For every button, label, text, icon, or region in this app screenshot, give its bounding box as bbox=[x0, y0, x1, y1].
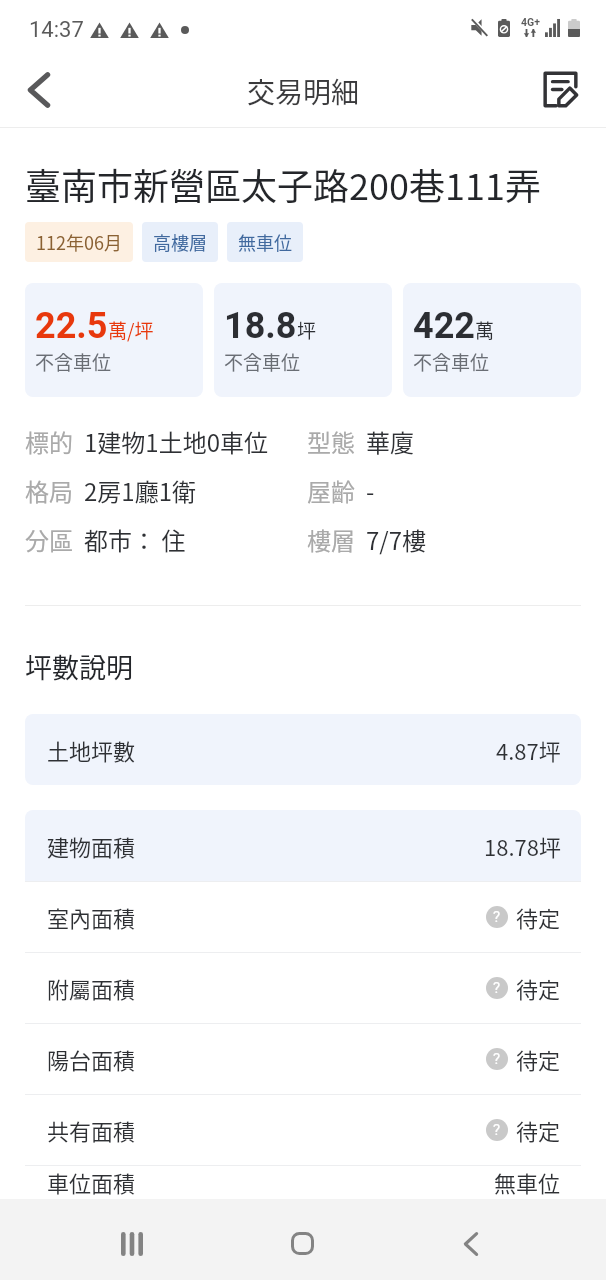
staticText: 待定 bbox=[516, 901, 561, 933]
staticText: 422 bbox=[413, 305, 475, 347]
staticText: 待定 bbox=[516, 1043, 561, 1075]
staticText: 坪數說明 bbox=[25, 647, 133, 686]
button[interactable]: 車位面積 bbox=[25, 1165, 581, 1199]
staticText: 陽台面積 bbox=[47, 1043, 136, 1075]
staticText: 臺南市新營區太子路200巷111弄 bbox=[25, 158, 541, 210]
staticText: 分區 bbox=[25, 522, 73, 557]
staticText: 無車位 bbox=[494, 1166, 561, 1198]
staticText: 14:37 bbox=[29, 17, 84, 43]
staticText: 4G+ bbox=[521, 16, 538, 28]
staticText: - bbox=[366, 473, 375, 508]
staticText: 交易明細 bbox=[247, 71, 360, 112]
staticText: 待定 bbox=[516, 972, 561, 1004]
button[interactable]: 土地坪數 bbox=[25, 714, 581, 785]
staticText: 高樓層 bbox=[153, 229, 207, 255]
staticText: 4.87坪 bbox=[496, 734, 561, 766]
button[interactable]: 室內面積 bbox=[25, 881, 581, 952]
button[interactable]: 22.5 bbox=[25, 283, 203, 397]
staticText: 標的 bbox=[25, 424, 73, 459]
staticText: 共有面積 bbox=[47, 1114, 136, 1146]
staticText: 屋齡 bbox=[307, 473, 355, 508]
staticText: 華廈 bbox=[366, 424, 414, 459]
button[interactable]: 422 bbox=[403, 283, 581, 397]
staticText: 112年06月 bbox=[36, 229, 122, 255]
button[interactable]: Edit note bbox=[530, 55, 606, 128]
staticText: 1建物1土地0車位 bbox=[84, 424, 268, 459]
button[interactable]: Home bbox=[261, 1199, 343, 1280]
staticText: ? bbox=[493, 1121, 501, 1139]
button[interactable]: 陽台面積 bbox=[25, 1023, 581, 1094]
button[interactable]: 建物面積 bbox=[25, 810, 581, 881]
staticText: 樓層 bbox=[307, 522, 355, 557]
staticText: 18.8 bbox=[224, 305, 297, 347]
button[interactable]: Back bbox=[430, 1199, 512, 1280]
staticText: ? bbox=[493, 908, 501, 926]
button[interactable]: Back bbox=[0, 55, 78, 128]
staticText: 不含車位 bbox=[224, 348, 301, 376]
staticText: 坪 bbox=[297, 316, 317, 344]
staticText: 18.78坪 bbox=[484, 830, 561, 862]
button[interactable]: 18.8 bbox=[214, 283, 392, 397]
staticText: 都市： 住 bbox=[84, 522, 186, 557]
staticText: 待定 bbox=[516, 1114, 561, 1146]
staticText: 建物面積 bbox=[47, 830, 136, 862]
staticText: 萬 bbox=[475, 316, 495, 344]
staticText: 2房1廳1衛 bbox=[84, 473, 196, 508]
staticText: 車位面積 bbox=[47, 1166, 136, 1198]
staticText: 不含車位 bbox=[35, 348, 112, 376]
staticText: 不含車位 bbox=[413, 348, 490, 376]
staticText: 附屬面積 bbox=[47, 972, 136, 1004]
staticText: ? bbox=[493, 979, 501, 997]
button[interactable]: 附屬面積 bbox=[25, 952, 581, 1023]
staticText: ? bbox=[493, 1050, 501, 1068]
staticText: 室內面積 bbox=[47, 901, 136, 933]
button[interactable]: Recent apps bbox=[91, 1199, 173, 1280]
staticText: 7/7樓 bbox=[366, 522, 427, 557]
staticText: 型態 bbox=[307, 424, 355, 459]
staticText: 22.5 bbox=[35, 305, 108, 347]
staticText: 萬/坪 bbox=[108, 316, 154, 344]
staticText: 格局 bbox=[25, 473, 73, 508]
button[interactable]: 共有面積 bbox=[25, 1094, 581, 1165]
staticText: 土地坪數 bbox=[47, 734, 136, 766]
staticText: 無車位 bbox=[238, 229, 292, 255]
